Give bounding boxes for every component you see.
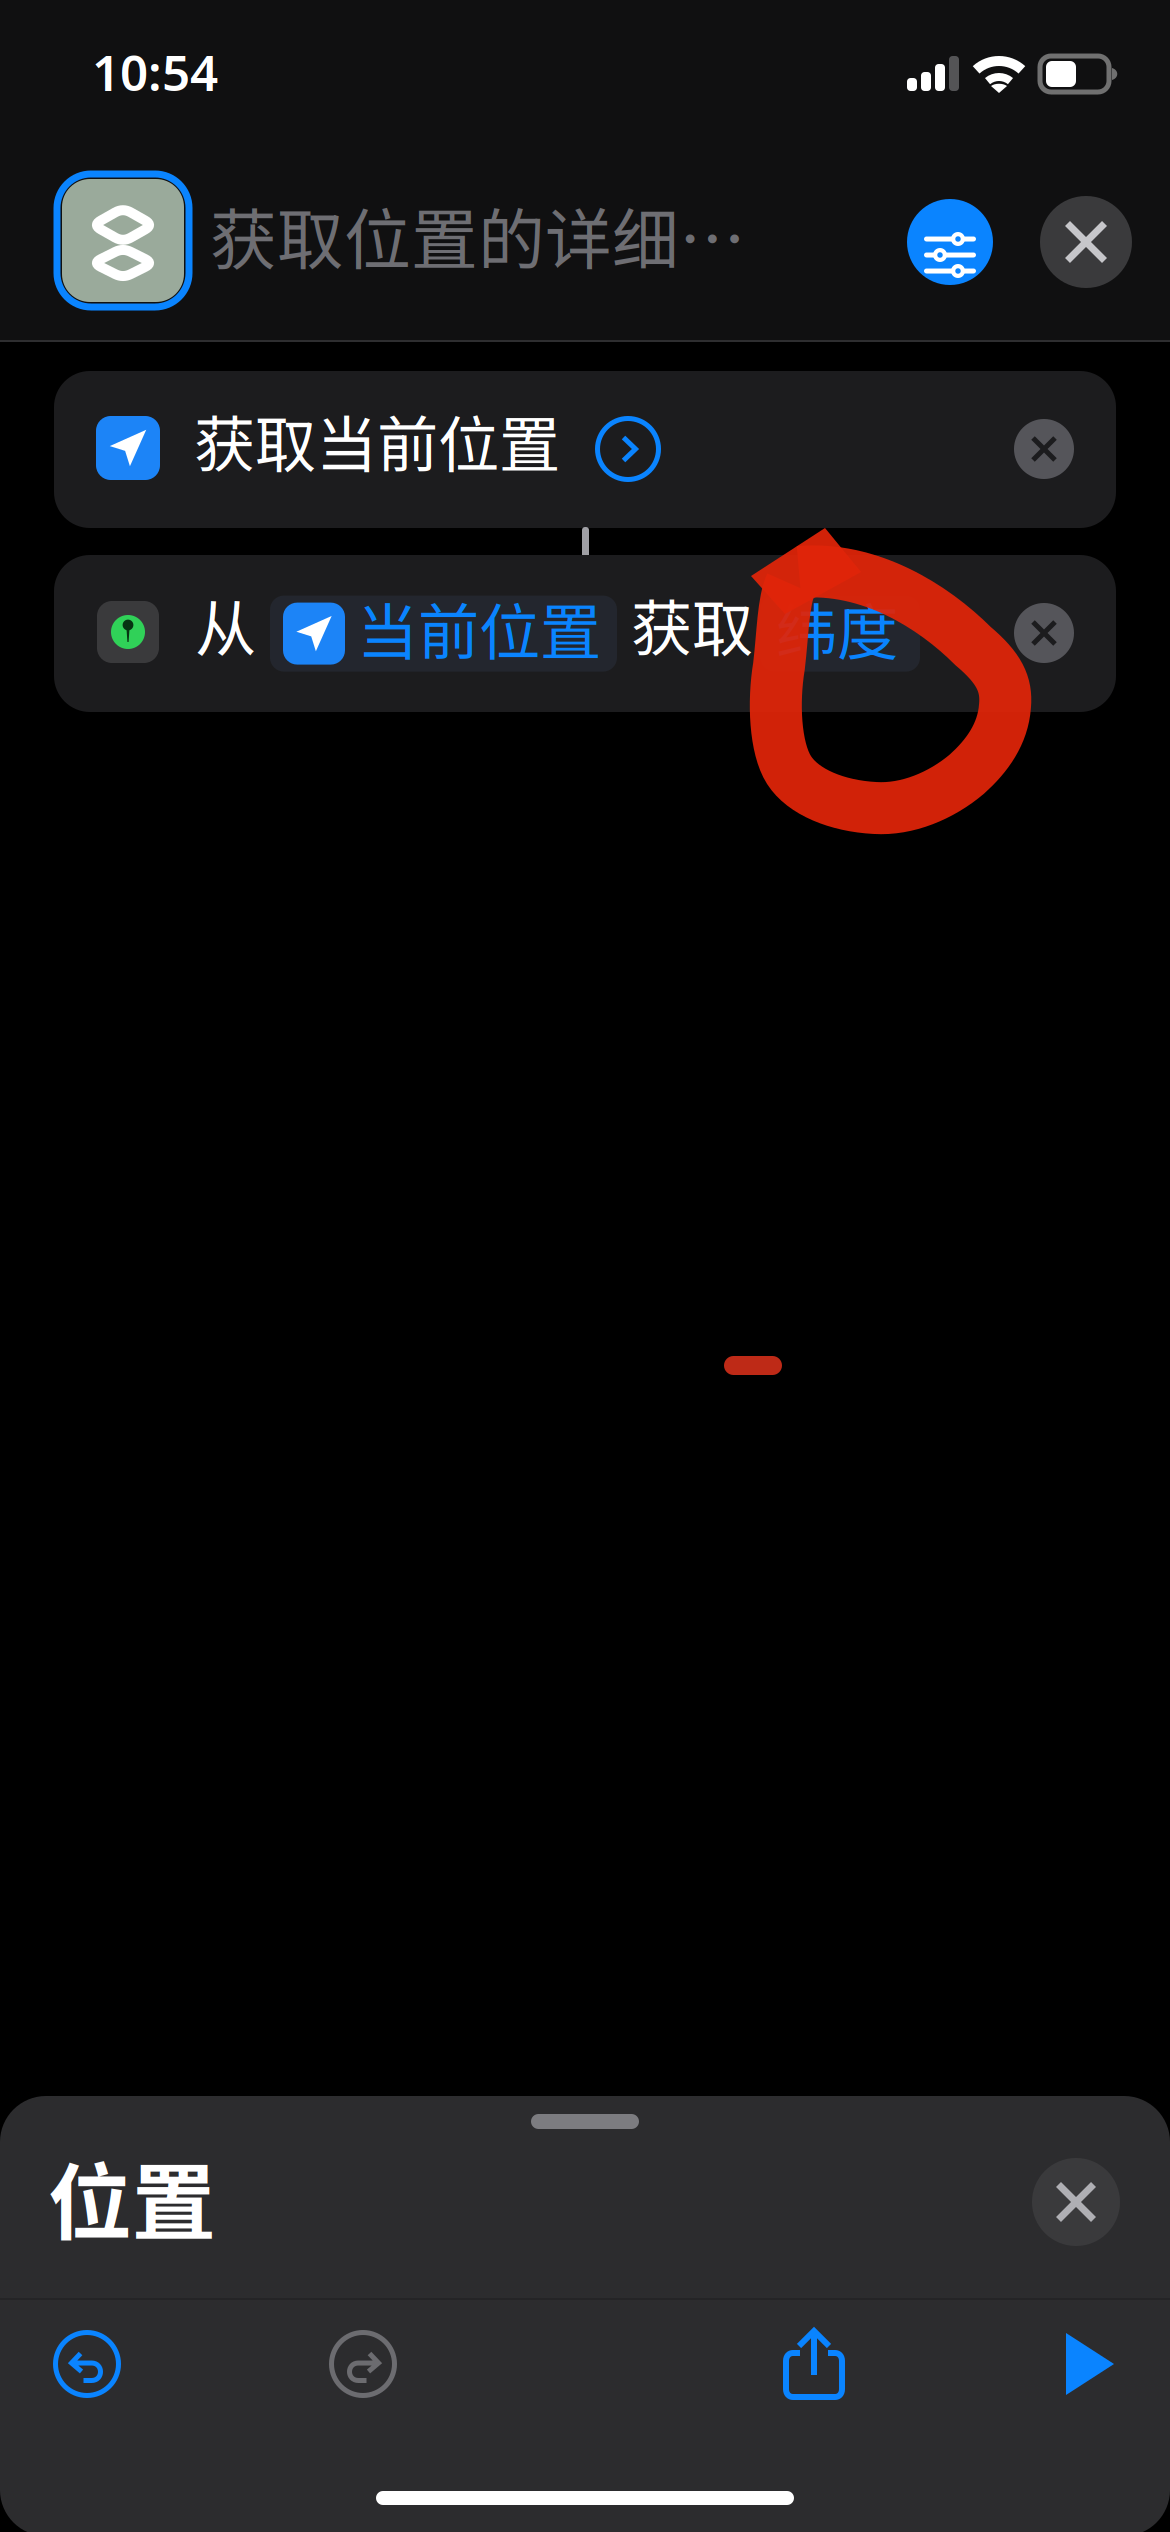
button[interactable]: Undo <box>54 2331 120 2397</box>
staticText: 当前位置 <box>357 584 601 672</box>
staticText: 10:54 <box>92 39 218 104</box>
staticText: 纬度 <box>776 584 898 672</box>
button[interactable]: 获取当前位置 <box>54 371 1116 528</box>
button[interactable]: Share <box>782 2327 846 2401</box>
staticText: 位置 <box>48 2136 216 2258</box>
staticText: 获取 <box>631 580 753 669</box>
button[interactable]: 从 <box>54 555 1116 712</box>
button[interactable]: Shortcut settings <box>907 199 993 285</box>
button[interactable]: Close location <box>1032 2158 1120 2246</box>
staticText: 获取当前位置 <box>194 396 560 485</box>
button[interactable]: Run shortcut <box>1062 2331 1118 2397</box>
staticText: 获取位置的详细… <box>210 187 746 283</box>
button[interactable]: Redo <box>330 2331 396 2397</box>
staticText: 从 <box>195 580 256 669</box>
button[interactable]: Close <box>1040 196 1132 288</box>
